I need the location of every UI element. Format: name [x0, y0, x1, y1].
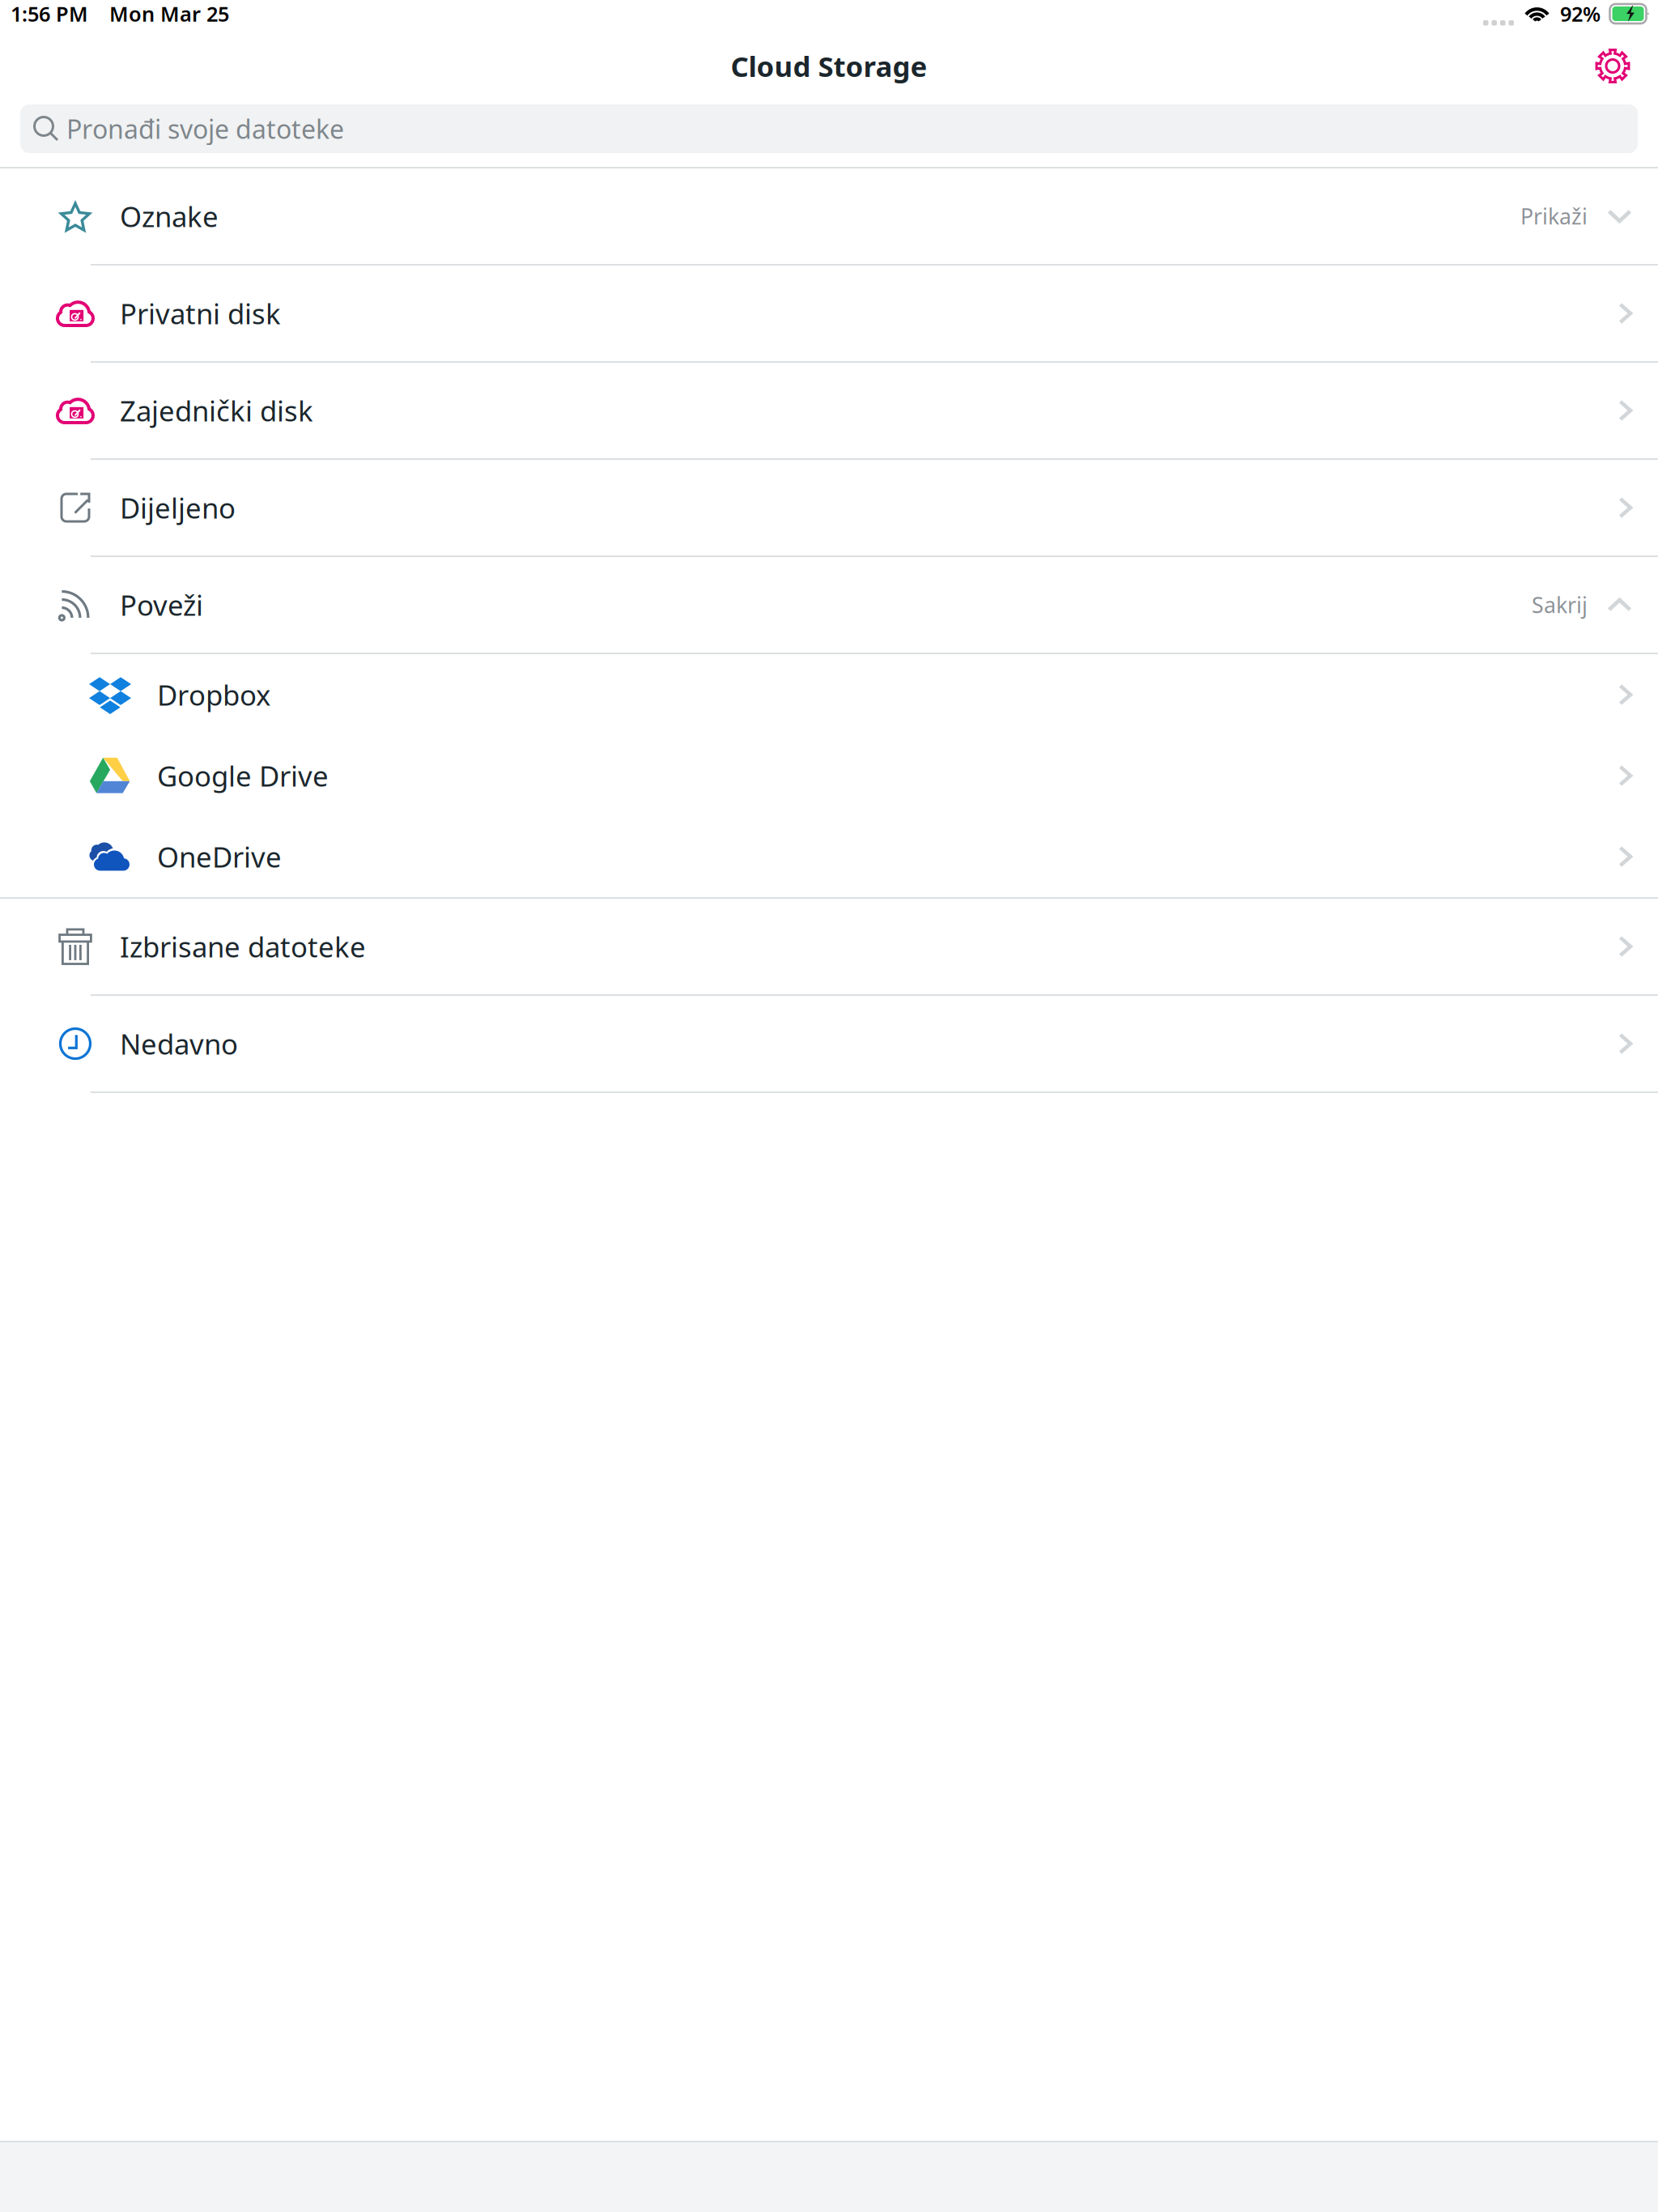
- button[interactable]: Dijeljeno: [0, 460, 1658, 555]
- staticText: Zajednički disk: [120, 392, 313, 429]
- button[interactable]: Nedavno: [0, 996, 1658, 1091]
- button[interactable]: Dropbox: [0, 654, 1658, 735]
- button[interactable]: Zajednički disk: [0, 363, 1658, 458]
- button[interactable]: Privatni disk: [0, 266, 1658, 361]
- staticText: Dropbox: [157, 676, 270, 713]
- staticText: Cloud Storage: [731, 47, 927, 85]
- staticText: OneDrive: [157, 838, 282, 875]
- staticText: Izbrisane datoteke: [120, 928, 366, 965]
- staticText: Mon Mar 25: [109, 0, 229, 27]
- button[interactable]: Izbrisane datoteke: [0, 899, 1658, 994]
- staticText: Sakrij: [1532, 590, 1588, 619]
- button[interactable]: Pronađi svoje datoteke: [20, 104, 1638, 153]
- staticText: Dijeljeno: [120, 489, 236, 526]
- button[interactable]: OneDrive: [0, 816, 1658, 897]
- button[interactable]: Poveži: [0, 557, 1658, 653]
- staticText: Nedavno: [120, 1025, 238, 1062]
- staticText: Poveži: [120, 586, 203, 623]
- staticText: 1:56 PM: [11, 0, 88, 27]
- staticText: Pronađi svoje datoteke: [66, 112, 344, 146]
- staticText: Prikaži: [1520, 202, 1588, 231]
- button[interactable]: Settings: [1580, 34, 1645, 98]
- staticText: Oznake: [120, 198, 219, 235]
- staticText: Privatni disk: [120, 295, 281, 332]
- button[interactable]: Oznake: [0, 168, 1658, 264]
- staticText: 92%: [1560, 0, 1601, 27]
- button[interactable]: Google Drive: [0, 735, 1658, 816]
- staticText: Google Drive: [157, 757, 329, 794]
